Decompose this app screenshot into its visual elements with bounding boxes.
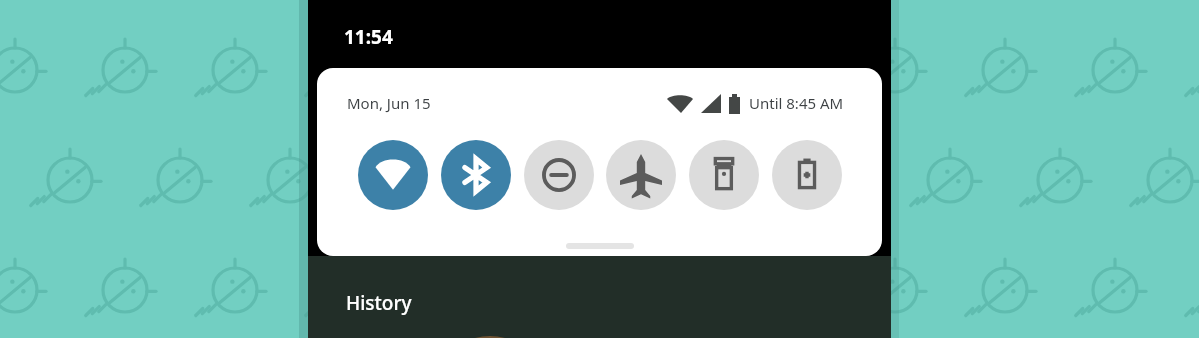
staticText: Mon, Jun 15 bbox=[347, 93, 431, 113]
staticText: Until 8:45 AM bbox=[749, 93, 844, 113]
button[interactable]: Flashlight bbox=[689, 140, 759, 210]
button[interactable]: Airplane mode bbox=[606, 140, 676, 210]
button[interactable]: Do Not Disturb bbox=[524, 140, 594, 210]
button[interactable]: History bbox=[346, 290, 412, 316]
button[interactable]: Bluetooth bbox=[441, 140, 511, 210]
button[interactable]: Wi-Fi bbox=[358, 140, 428, 210]
button[interactable]: Battery saver bbox=[772, 140, 842, 210]
staticText: 11:54 bbox=[344, 24, 393, 50]
button[interactable]: Mon, Jun 15 bbox=[347, 93, 431, 113]
staticText: History bbox=[346, 290, 412, 316]
